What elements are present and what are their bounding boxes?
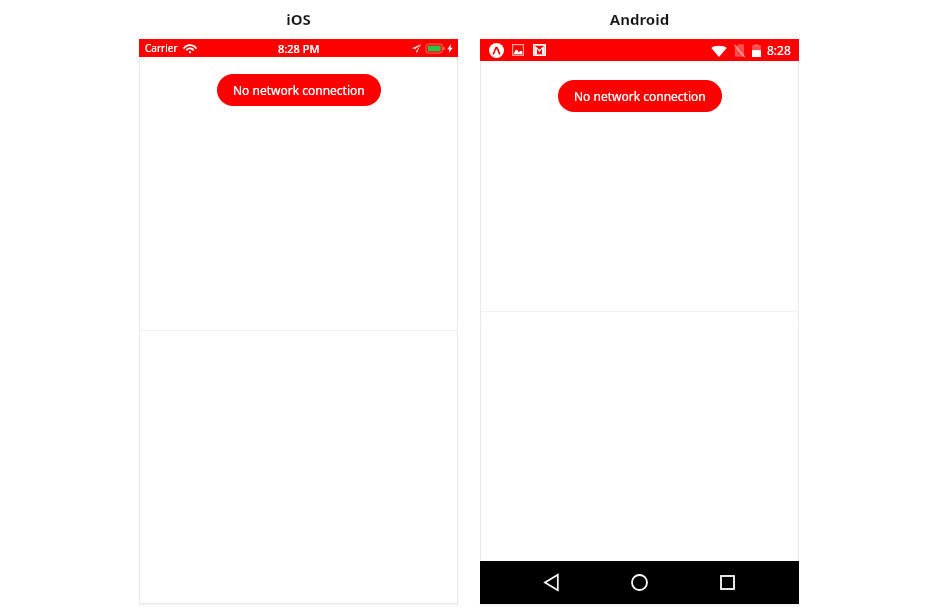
button[interactable]: No network connection bbox=[217, 74, 381, 106]
staticText: 8:28 bbox=[767, 42, 791, 58]
button[interactable]: Back bbox=[527, 561, 575, 604]
button[interactable]: No network connection bbox=[558, 80, 722, 112]
staticText: iOS bbox=[139, 9, 458, 29]
staticText: No network connection bbox=[233, 82, 365, 98]
staticText: No network connection bbox=[574, 88, 706, 104]
button[interactable]: Home bbox=[615, 561, 663, 604]
button[interactable]: Recents bbox=[703, 561, 751, 604]
staticText: Android bbox=[480, 9, 799, 29]
staticText: 8:28 PM bbox=[278, 41, 320, 56]
staticText: Carrier bbox=[145, 41, 178, 55]
